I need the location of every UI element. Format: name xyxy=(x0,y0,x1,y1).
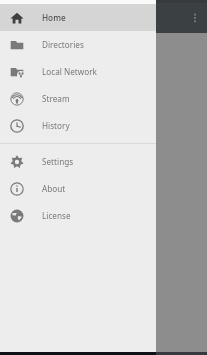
button[interactable]: Stream xyxy=(0,85,156,112)
staticText: About xyxy=(42,183,66,194)
button[interactable]: History xyxy=(0,112,156,139)
button[interactable]: About xyxy=(0,175,156,202)
staticText: Home xyxy=(42,12,66,23)
staticText: History xyxy=(42,120,70,131)
staticText: Stream xyxy=(42,93,70,104)
staticText: License xyxy=(42,210,71,221)
button[interactable]: Directories xyxy=(0,31,156,58)
button[interactable]: Local Network xyxy=(0,58,156,85)
button[interactable]: Settings xyxy=(0,148,156,175)
staticText: Directories xyxy=(42,39,84,50)
staticText: Local Network xyxy=(42,66,97,77)
button[interactable]: More options xyxy=(185,8,205,28)
button[interactable]: License xyxy=(0,202,156,229)
button[interactable]: Home xyxy=(0,4,156,31)
staticText: Settings xyxy=(42,156,74,167)
